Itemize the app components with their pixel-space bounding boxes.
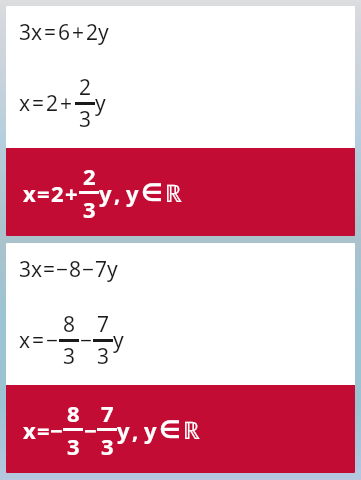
staticText: ∈ <box>159 416 181 444</box>
staticText: , <box>132 415 139 445</box>
staticText: − <box>50 415 63 445</box>
staticText: y <box>117 415 130 445</box>
staticText: 3 <box>63 342 76 371</box>
staticText: 7y <box>95 255 118 284</box>
staticText: 3 <box>83 194 96 224</box>
staticText: = <box>37 415 50 445</box>
staticText: 3 <box>67 431 80 461</box>
staticText: y <box>113 326 124 355</box>
staticText: + <box>65 178 78 208</box>
staticText: 2 <box>51 178 64 208</box>
staticText: 6 <box>58 18 71 47</box>
staticText: 3 <box>79 105 92 134</box>
staticText: x <box>19 326 31 355</box>
staticText: x <box>23 415 36 445</box>
button[interactable]: 3x <box>6 6 355 236</box>
staticText: = <box>44 18 57 47</box>
staticText: = <box>32 326 45 355</box>
staticText: = <box>32 89 45 118</box>
staticText: − <box>80 326 93 355</box>
staticText: y <box>144 415 157 445</box>
staticText: x <box>23 178 36 208</box>
staticText: y <box>126 178 139 208</box>
staticText: − <box>84 415 97 445</box>
staticText: ∈ <box>141 179 163 207</box>
staticText: 2 <box>79 73 92 102</box>
staticText: − <box>82 255 95 284</box>
staticText: 3 <box>97 342 110 371</box>
staticText: x <box>19 89 31 118</box>
staticText: 8 <box>67 398 80 428</box>
staticText: 8 <box>63 310 76 339</box>
staticText: 3x <box>19 18 43 47</box>
staticText: y <box>95 89 106 118</box>
staticText: , <box>114 178 121 208</box>
staticText: 3 <box>101 431 114 461</box>
staticText: = <box>37 178 50 208</box>
staticText: 7 <box>97 310 110 339</box>
staticText: 2 <box>46 89 59 118</box>
staticText: ℝ <box>183 413 201 446</box>
staticText: ℝ <box>165 176 183 209</box>
staticText: = <box>43 255 56 284</box>
staticText: 8 <box>69 255 82 284</box>
staticText: 3x <box>19 255 43 284</box>
staticText: 2y <box>86 18 109 47</box>
staticText: 7 <box>101 398 114 428</box>
staticText: 2 <box>83 161 96 191</box>
staticText: − <box>56 255 69 284</box>
staticText: y <box>99 178 112 208</box>
staticText: + <box>60 89 73 118</box>
button[interactable]: 3x <box>6 243 355 473</box>
staticText: − <box>46 326 59 355</box>
staticText: + <box>72 18 85 47</box>
